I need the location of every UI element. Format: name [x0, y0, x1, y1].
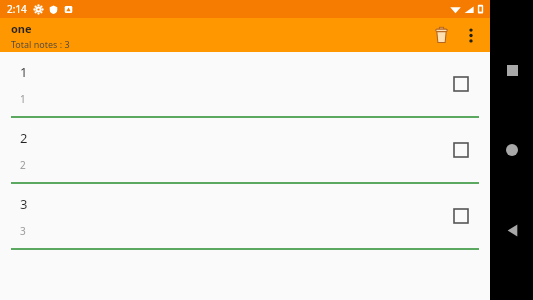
staticText: one [11, 21, 32, 36]
button[interactable]: Select note [454, 209, 468, 223]
button[interactable]: More options [456, 20, 486, 50]
button[interactable]: Back [495, 213, 529, 247]
button[interactable]: 2 [0, 118, 490, 184]
button[interactable]: Select note [454, 77, 468, 91]
staticText: 2:14 [7, 2, 27, 16]
staticText: 1 [20, 63, 28, 81]
button[interactable]: Recent apps [495, 53, 529, 87]
button[interactable]: Select note [454, 143, 468, 157]
staticText: Total notes : 3 [11, 38, 70, 50]
staticText: 2 [20, 158, 26, 172]
staticText: 1 [20, 92, 26, 106]
button[interactable]: Delete [426, 20, 456, 50]
staticText: 3 [20, 224, 26, 238]
button[interactable]: Home [495, 133, 529, 167]
button[interactable]: 1 [0, 52, 490, 118]
staticText: 2 [20, 129, 28, 147]
button[interactable]: 3 [0, 184, 490, 250]
staticText: 3 [20, 195, 28, 213]
